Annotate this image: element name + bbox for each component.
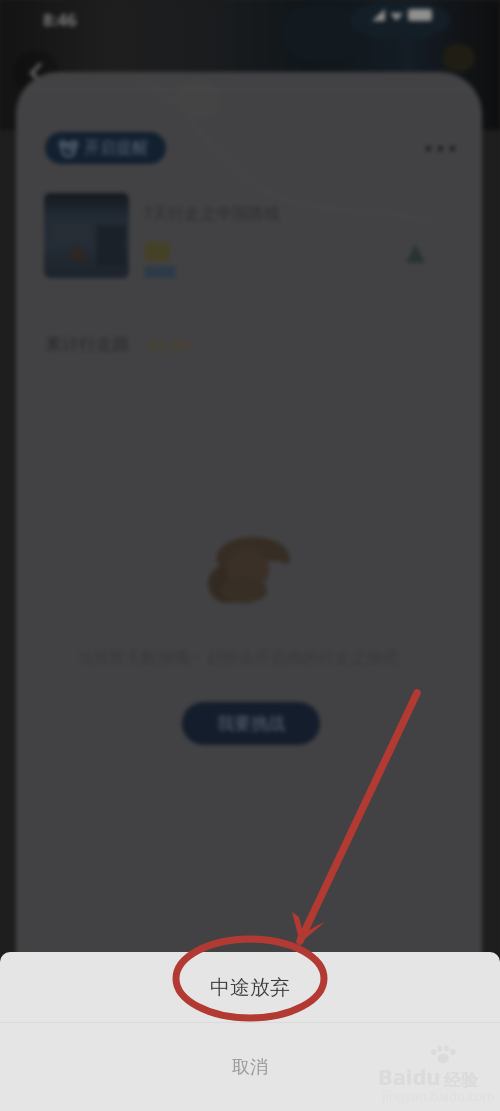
staticText: 开启提醒 bbox=[84, 138, 148, 158]
button[interactable]: 开启提醒 bbox=[45, 132, 166, 164]
button[interactable]: 中途放弃 bbox=[0, 952, 500, 1022]
button[interactable]: More options bbox=[422, 142, 459, 155]
button[interactable]: 取消 bbox=[0, 1023, 500, 1111]
staticText: 我要挑战 bbox=[217, 713, 285, 734]
button[interactable]: Back bbox=[13, 50, 59, 96]
staticText: 99.99 bbox=[146, 334, 190, 357]
staticText: 经验 bbox=[444, 1070, 478, 1091]
staticText: 8:46 bbox=[43, 8, 77, 31]
staticText: 中途放弃 bbox=[210, 975, 290, 1000]
button[interactable]: 我要挑战 bbox=[182, 702, 320, 745]
staticText: 取消 bbox=[232, 1056, 268, 1079]
staticText: 累计行走路 bbox=[45, 334, 130, 355]
staticText: Baidu bbox=[378, 1061, 441, 1091]
